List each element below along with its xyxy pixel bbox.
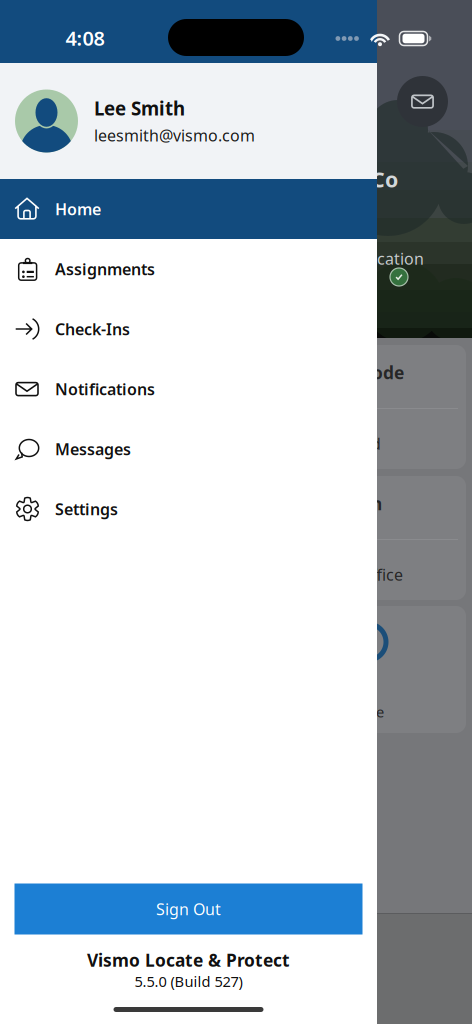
staticText: Settings <box>55 498 118 520</box>
button[interactable]: Sign Out <box>14 883 362 934</box>
staticText: Location <box>307 492 382 515</box>
button[interactable]: Settings <box>0 479 377 539</box>
button[interactable]: Assignments <box>0 239 377 299</box>
staticText: 5.5.0 (Build 527) <box>134 971 242 991</box>
staticText: Vismo & Co <box>278 165 398 193</box>
staticText: Update <box>334 702 384 721</box>
staticText: Messages <box>55 438 131 460</box>
staticText: Standard <box>312 433 381 454</box>
staticText: Last Known Location <box>268 248 424 269</box>
staticText: Home <box>55 198 101 220</box>
button[interactable]: Messages <box>0 419 377 479</box>
staticText: Head Office <box>315 564 403 585</box>
staticText: Assignments <box>55 258 155 280</box>
staticText: Notifications <box>55 378 155 400</box>
staticText: Check-Ins <box>55 318 130 340</box>
button[interactable]: Notifications <box>0 359 377 419</box>
staticText: leesmith@vismo.com <box>94 125 255 146</box>
staticText: Tracking Mode <box>278 361 404 384</box>
staticText: Sign Out <box>156 898 221 920</box>
button[interactable]: Check-Ins <box>0 299 377 359</box>
staticText: 4:08 <box>65 25 104 51</box>
button[interactable]: Home <box>0 179 377 239</box>
staticText: Lee Smith <box>94 96 185 121</box>
staticText: Vismo Locate & Protect <box>87 948 290 971</box>
